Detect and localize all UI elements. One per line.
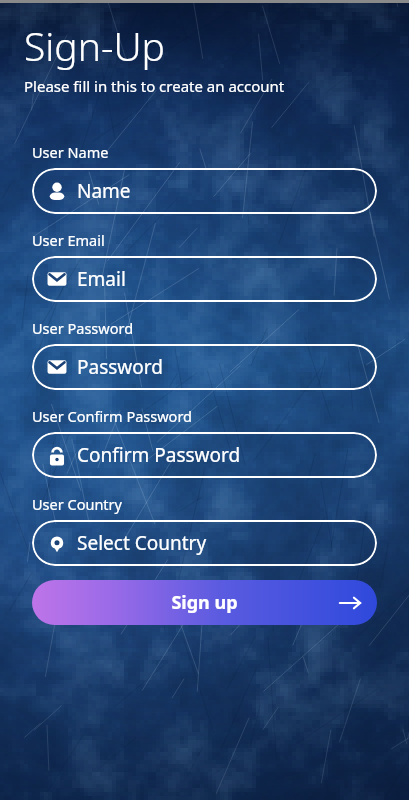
button[interactable]: Name [32, 168, 377, 214]
staticText: User Country [32, 494, 122, 514]
staticText: Select Country [77, 530, 207, 556]
staticText: Sign-Up [24, 19, 165, 72]
staticText: Sign up [171, 590, 238, 615]
button[interactable]: Select Country [32, 520, 377, 566]
staticText: Name [77, 178, 131, 204]
staticText: User Email [32, 230, 105, 250]
staticText: Email [77, 266, 126, 292]
staticText: User Password [32, 318, 134, 338]
button[interactable]: Password [32, 344, 377, 390]
button[interactable]: Sign up [32, 580, 377, 625]
other: Submit [339, 592, 361, 614]
staticText: Confirm Password [77, 442, 241, 468]
button[interactable]: Confirm Password [32, 432, 377, 478]
button[interactable]: Email [32, 256, 377, 302]
staticText: Please fill in this to create an account [24, 76, 285, 96]
staticText: Password [77, 354, 163, 380]
staticText: User Confirm Password [32, 406, 193, 426]
staticText: User Name [32, 142, 109, 162]
